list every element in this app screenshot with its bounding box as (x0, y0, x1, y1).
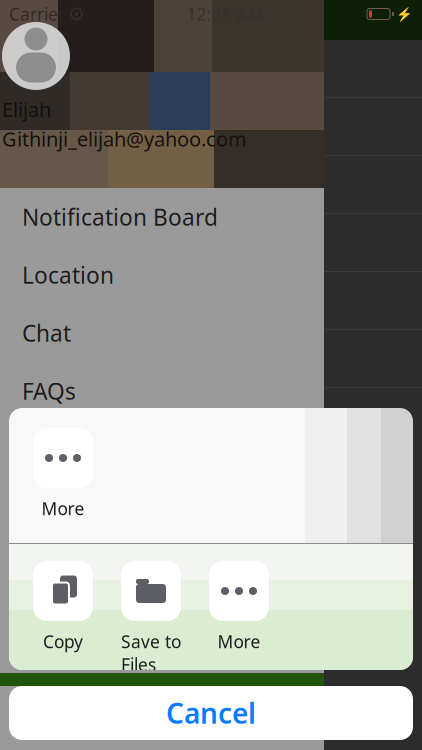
staticText: ⚡ (396, 6, 413, 22)
button[interactable]: Location (0, 246, 324, 304)
staticText: Copy (43, 630, 83, 653)
staticText: Githinji_elijah@yahoo.com (2, 126, 247, 152)
staticText: Cancel (166, 694, 256, 732)
button[interactable]: Cancel (9, 686, 413, 740)
button[interactable]: Notification Board (0, 188, 324, 246)
button[interactable]: Chat (0, 304, 324, 362)
staticText: Carrier (9, 2, 65, 25)
staticText: Location (22, 260, 114, 290)
button[interactable]: More (200, 561, 278, 656)
staticText: More (41, 497, 84, 520)
staticText: 12:28 AM (186, 2, 263, 25)
staticText: Save to Files (121, 630, 181, 676)
staticText: Elijah (2, 96, 51, 123)
staticText: FAQs (22, 376, 76, 406)
button[interactable]: More (24, 428, 102, 523)
button[interactable]: Copy (24, 561, 102, 656)
staticText: More (217, 630, 260, 653)
button[interactable]: FAQs (0, 362, 324, 420)
staticText: Notification Board (22, 202, 218, 232)
staticText: Chat (22, 318, 71, 348)
button[interactable]: Save to Files (106, 561, 196, 656)
